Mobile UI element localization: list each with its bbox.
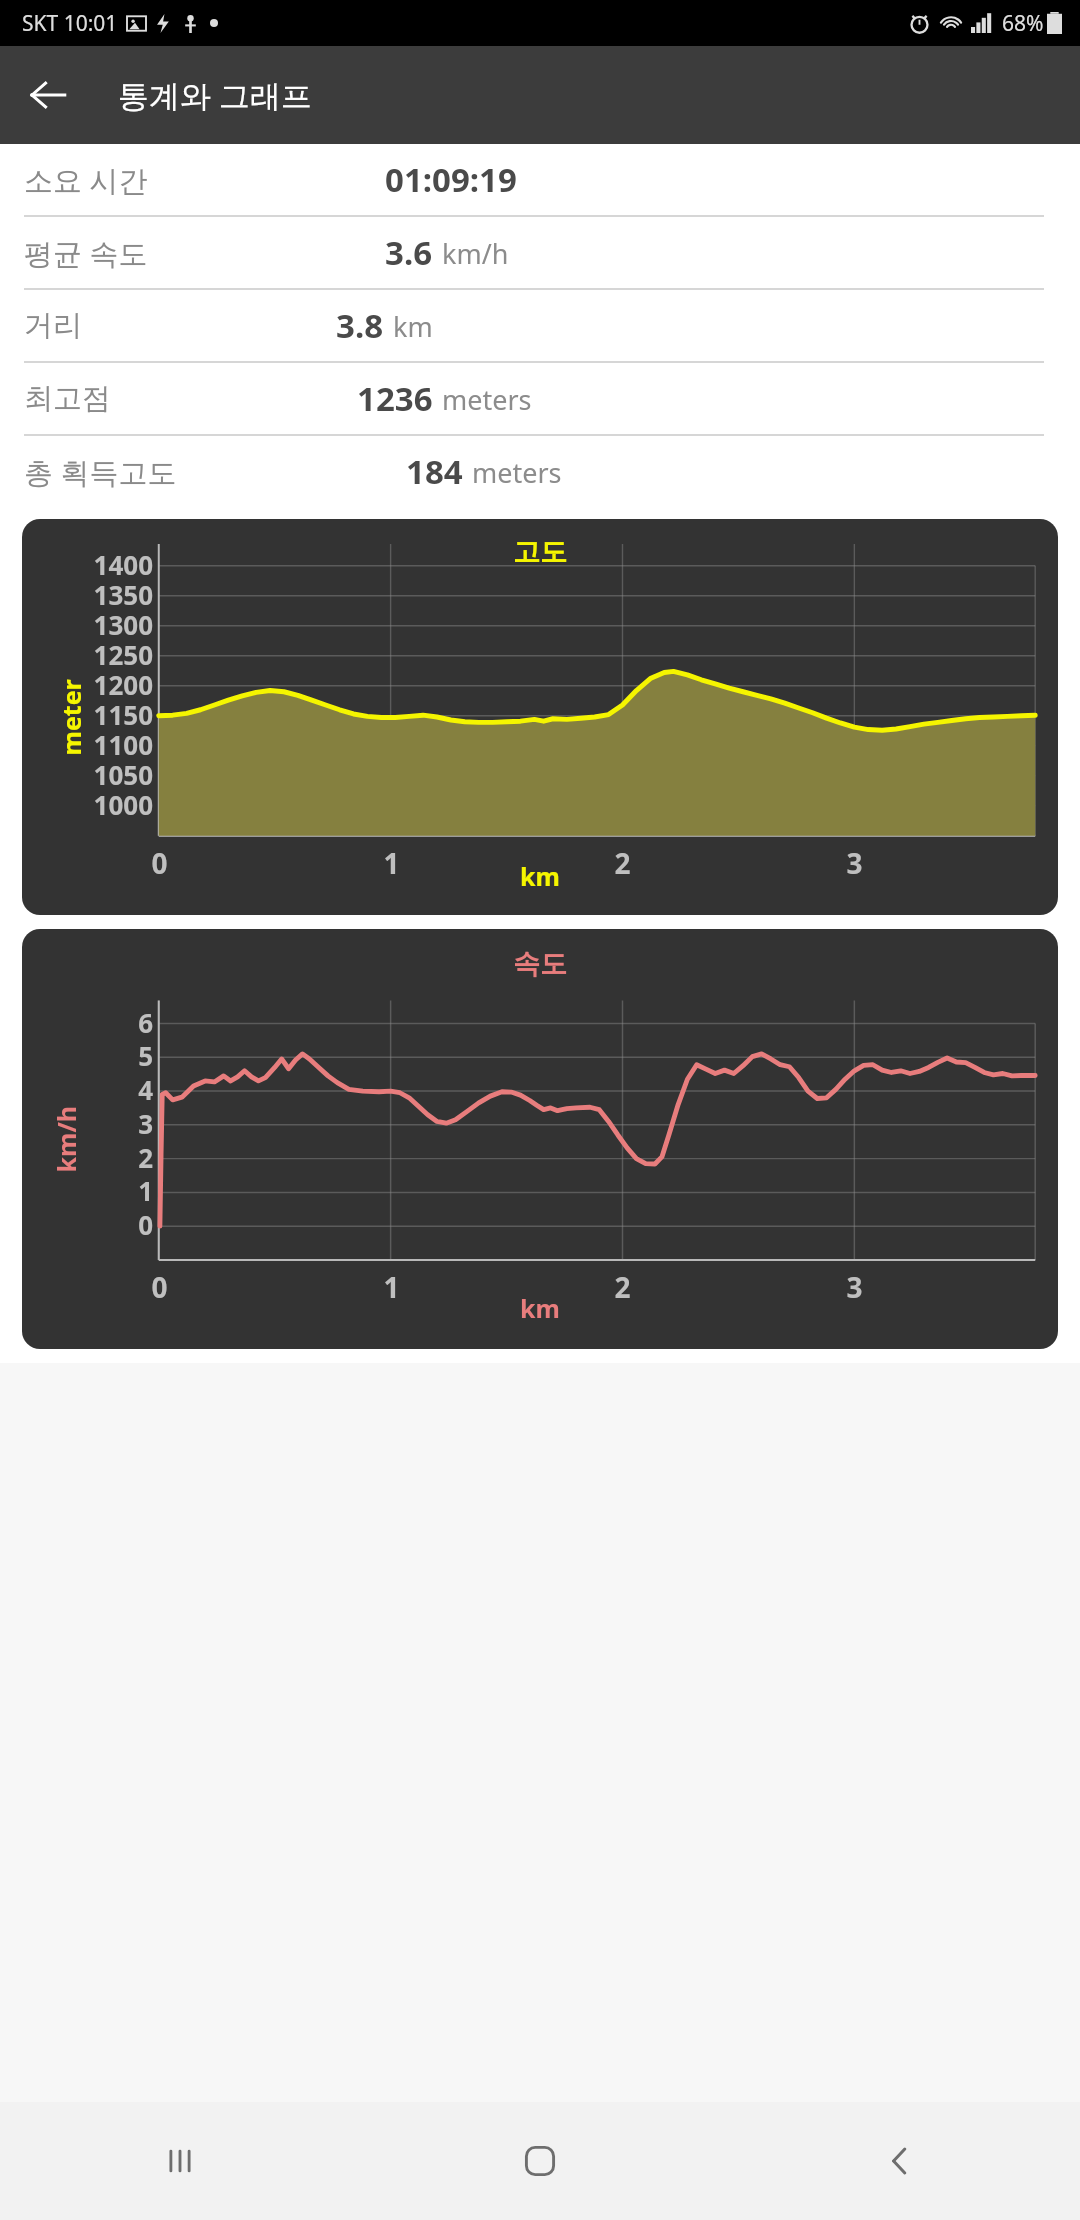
button[interactable]: 거리 — [24, 290, 1056, 361]
button[interactable]: Back — [720, 2102, 1080, 2220]
staticText: 고도 — [513, 535, 567, 569]
staticText: 1050 — [93, 757, 153, 792]
staticText: 2 — [614, 844, 631, 882]
staticText: 4 — [138, 1072, 153, 1107]
button[interactable]: 고도 — [22, 519, 1058, 915]
staticText: 0 — [151, 844, 168, 882]
staticText: 1400 — [93, 547, 153, 582]
staticText: km/h — [48, 1105, 82, 1172]
staticText: 3 — [846, 844, 863, 882]
staticText: km — [520, 1291, 560, 1325]
staticText: SKT 10:01 — [22, 9, 118, 38]
staticText: 3.6 — [385, 230, 433, 275]
staticText: 2 — [138, 1140, 153, 1175]
staticText: 6 — [138, 1005, 153, 1040]
staticText: 3 — [138, 1106, 153, 1141]
staticText: 1200 — [93, 667, 153, 702]
button[interactable]: 평균 속도 — [24, 217, 1056, 288]
staticText: 1250 — [93, 637, 153, 672]
button[interactable]: 최고점 — [24, 363, 1056, 434]
button[interactable]: Back — [0, 47, 96, 143]
staticText: 총 획득고도 — [24, 452, 177, 492]
staticText: 1 — [138, 1173, 153, 1208]
button[interactable]: 소요 시간 — [24, 144, 1056, 215]
staticText: 184 — [406, 449, 463, 494]
staticText: 2 — [614, 1268, 631, 1306]
staticText: 68% — [1002, 9, 1044, 38]
staticText: meter — [53, 678, 87, 755]
staticText: km — [520, 859, 560, 893]
staticText: 3.8 — [336, 303, 384, 348]
staticText: 1350 — [93, 577, 153, 612]
staticText: 3 — [846, 1268, 863, 1306]
staticText: 1 — [383, 844, 400, 882]
button[interactable]: Home — [360, 2102, 720, 2220]
button[interactable]: 속도 — [22, 929, 1058, 1349]
staticText: 01:09:19 — [385, 157, 517, 202]
staticText: 1000 — [93, 787, 153, 822]
staticText: 1150 — [93, 697, 153, 732]
staticText: 0 — [138, 1207, 153, 1242]
staticText: 5 — [138, 1038, 153, 1073]
staticText: 1 — [383, 1268, 400, 1306]
staticText: 거리 — [24, 307, 82, 344]
staticText: km/h — [442, 235, 509, 272]
staticText: km — [393, 308, 433, 345]
button[interactable]: Recents — [0, 2102, 360, 2220]
staticText: 1300 — [93, 607, 153, 642]
staticText: 1100 — [93, 727, 153, 762]
staticText: 소요 시간 — [24, 160, 148, 200]
staticText: 통계와 그래프 — [118, 74, 313, 116]
button[interactable]: 총 획득고도 — [24, 436, 1056, 507]
staticText: 속도 — [513, 947, 567, 981]
staticText: 1236 — [357, 376, 433, 421]
staticText: meters — [472, 454, 562, 491]
staticText: 최고점 — [24, 380, 111, 417]
staticText: meters — [442, 381, 532, 418]
staticText: 평균 속도 — [24, 233, 148, 273]
staticText: 0 — [151, 1268, 168, 1306]
